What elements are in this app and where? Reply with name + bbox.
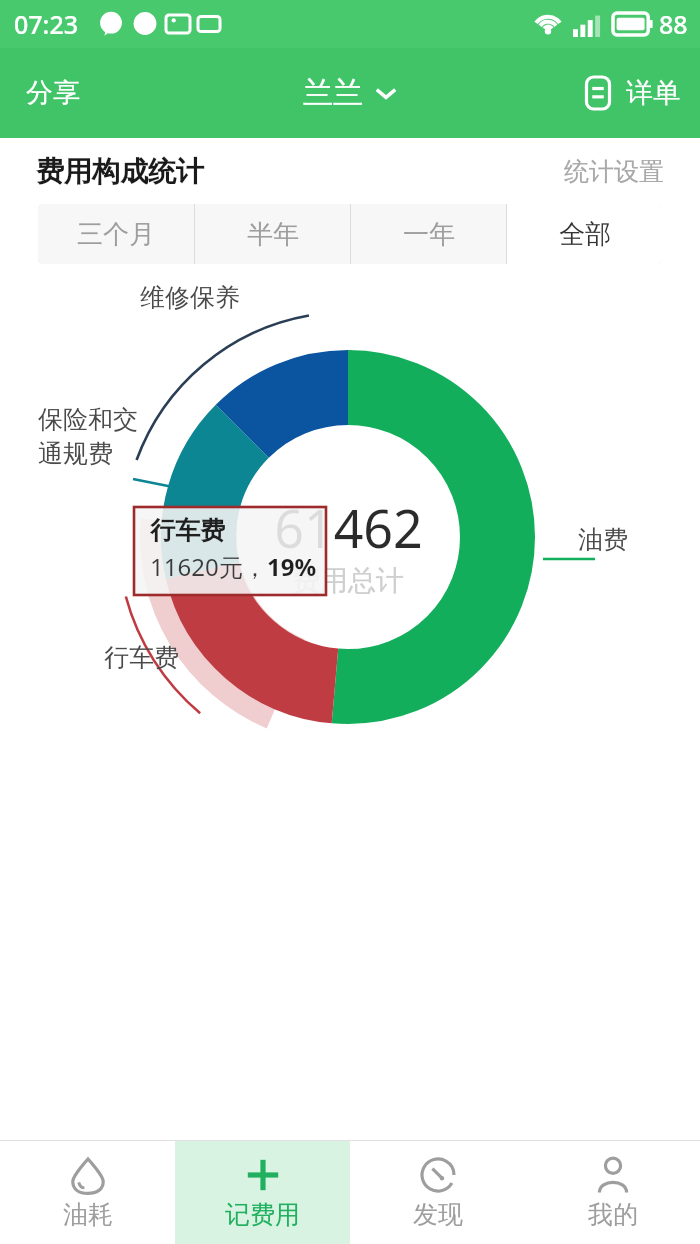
staticText: 费用总计 <box>292 563 404 598</box>
button[interactable]: 发现 <box>350 1141 525 1244</box>
button[interactable]: 三个月 <box>38 204 194 264</box>
button[interactable]: 详单 <box>562 64 700 122</box>
staticText: 详单 <box>626 76 680 110</box>
staticText: 88 <box>659 7 688 41</box>
staticText: 油耗 <box>63 1199 113 1230</box>
staticText: 记费用 <box>225 1199 300 1230</box>
staticText: 兰兰 <box>303 74 363 112</box>
staticText: 油费 <box>578 524 628 555</box>
button[interactable]: 分享 <box>0 62 106 124</box>
button[interactable]: 油耗 <box>0 1141 175 1244</box>
button[interactable]: 兰兰 <box>287 64 413 122</box>
staticText: 07:23 <box>14 7 79 41</box>
button[interactable]: 统计设置 <box>528 148 700 195</box>
button[interactable]: 我的 <box>525 1141 700 1244</box>
staticText: 半年 <box>247 218 299 251</box>
button[interactable]: 半年 <box>195 204 350 264</box>
staticText: 维修保养 <box>140 282 240 313</box>
button[interactable]: 全部 <box>507 204 662 264</box>
staticText: 61462 <box>274 492 423 563</box>
button[interactable]: 记费用 <box>175 1141 350 1244</box>
staticText: 全部 <box>559 218 611 251</box>
staticText: 分享 <box>26 76 80 110</box>
staticText: 三个月 <box>77 218 155 251</box>
staticText: 行车费 <box>104 642 179 673</box>
other: 详单 <box>582 77 614 109</box>
staticText: 费用构成统计 <box>36 154 204 189</box>
staticText: 一年 <box>403 218 455 251</box>
staticText: 发现 <box>413 1199 463 1230</box>
staticText: 11620元， <box>150 550 267 583</box>
staticText: 统计设置 <box>564 156 664 187</box>
staticText: 我的 <box>588 1199 638 1230</box>
staticText: 行车费 <box>150 515 225 546</box>
staticText: 保险和交 通规费 <box>38 404 138 470</box>
staticText: 19% <box>267 550 317 583</box>
button[interactable]: 一年 <box>351 204 506 264</box>
